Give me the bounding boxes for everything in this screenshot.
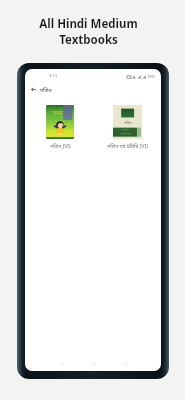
- button[interactable]: गणित: [107, 105, 148, 149]
- button[interactable]: Back: [28, 84, 38, 94]
- staticText: 79%: [147, 74, 155, 79]
- staticText: गणित: [124, 120, 132, 125]
- staticText: गणित एवं प्रविधि (VI): [107, 142, 148, 149]
- staticText: गणित: [40, 86, 52, 93]
- button[interactable]: गणित (VI): [46, 105, 74, 149]
- staticText: Textbooks: [59, 32, 118, 48]
- staticText: All Hindi Medium: [39, 16, 138, 32]
- staticText: गणित (VI): [50, 142, 71, 149]
- staticText: 9:13: [49, 73, 57, 78]
